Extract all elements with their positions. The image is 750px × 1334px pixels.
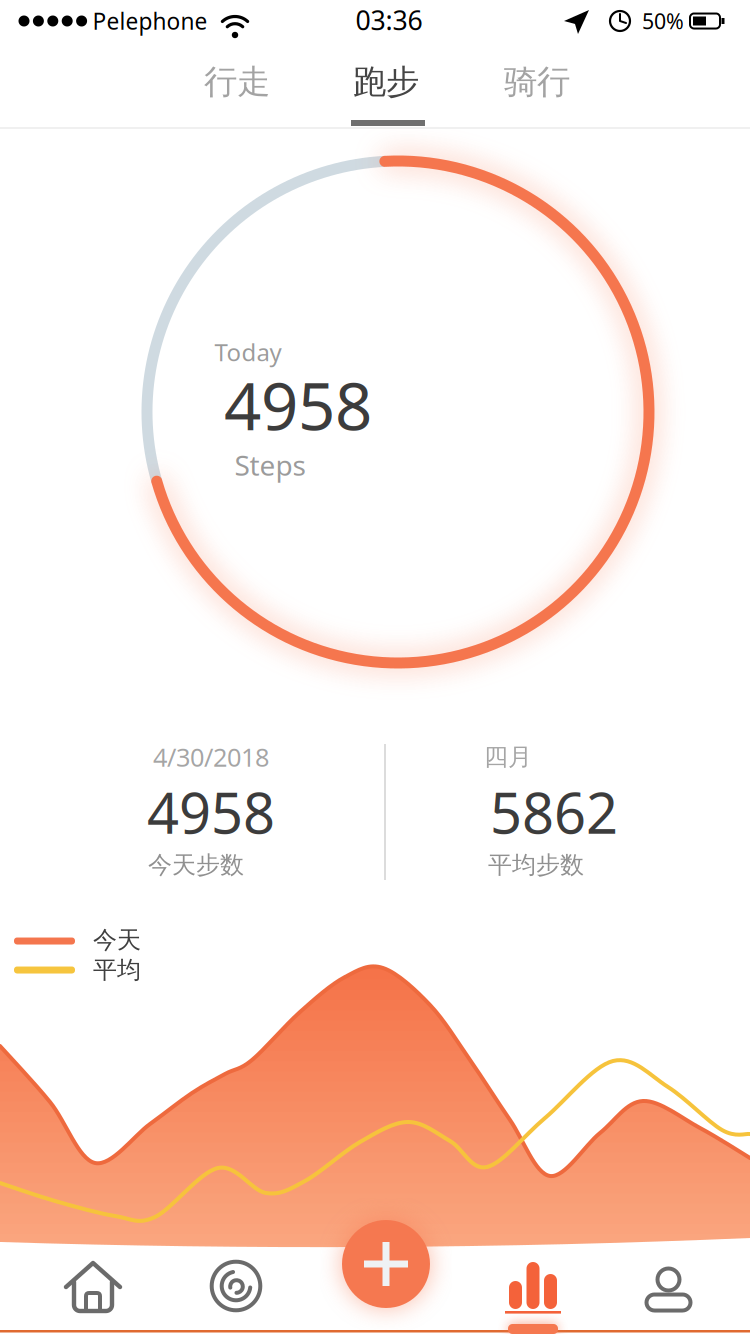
staticText: 4958 xyxy=(147,775,275,849)
staticText: Steps xyxy=(234,446,305,484)
staticText: 跑步 xyxy=(353,61,419,102)
staticText: 今天步数 xyxy=(148,850,244,880)
button[interactable]: Add xyxy=(339,1217,433,1311)
staticText: 骑行 xyxy=(504,61,570,102)
staticText: 4958 xyxy=(224,362,372,448)
staticText: Pelephone xyxy=(92,6,207,36)
staticText: 4/30/2018 xyxy=(153,740,269,774)
staticText: 今天 xyxy=(93,925,141,955)
staticText: 平均步数 xyxy=(488,850,584,880)
button[interactable]: Statistics xyxy=(488,1246,578,1330)
button[interactable]: 骑行 xyxy=(477,52,597,112)
staticText: Today xyxy=(214,336,281,368)
button[interactable]: Activity xyxy=(191,1245,281,1329)
staticText: 50% xyxy=(642,7,684,35)
button[interactable]: 行走 xyxy=(177,52,297,112)
button[interactable]: 跑步 xyxy=(326,52,446,112)
button[interactable]: Profile xyxy=(623,1246,713,1330)
staticText: 行走 xyxy=(204,61,270,102)
staticText: 平均 xyxy=(93,955,141,985)
staticText: 03:36 xyxy=(355,2,422,38)
staticText: 5862 xyxy=(490,775,618,849)
staticText: 四月 xyxy=(484,742,532,772)
button[interactable]: Home xyxy=(48,1246,138,1330)
